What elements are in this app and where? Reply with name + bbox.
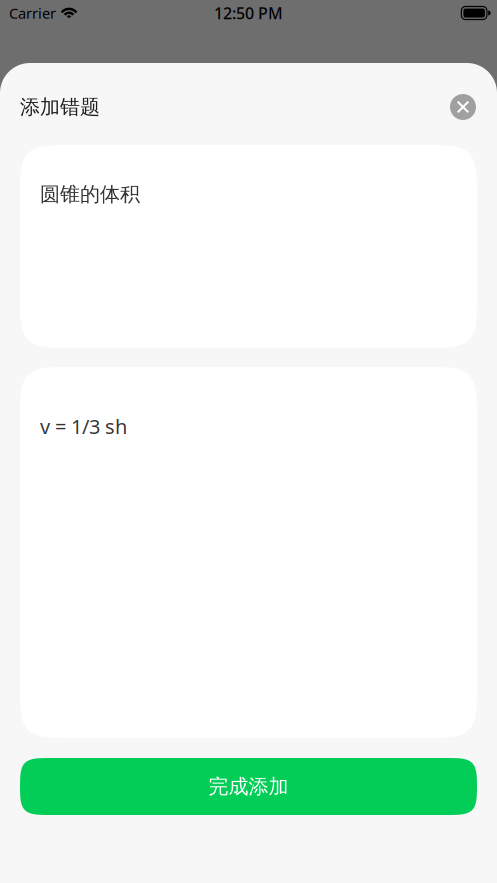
staticText: 添加错题 (20, 95, 100, 119)
staticText: 12:50 PM (214, 2, 283, 24)
button[interactable]: 完成添加 (20, 758, 477, 815)
button[interactable]: Close (441, 85, 485, 129)
staticText: 圆锥的体积 (40, 182, 140, 207)
staticText: 完成添加 (208, 774, 288, 799)
staticText: v = 1/3 sh (40, 413, 127, 440)
staticText: Carrier (9, 3, 56, 23)
